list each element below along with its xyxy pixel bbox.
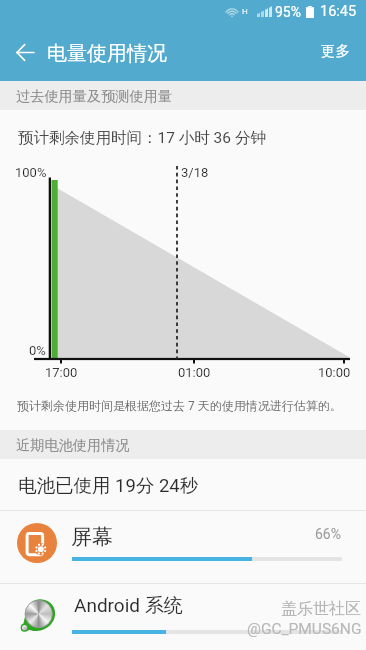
button[interactable]: 更多 xyxy=(313,34,358,68)
staticText: 0% xyxy=(29,343,46,358)
staticText: 17:00 xyxy=(45,365,78,380)
staticText: 近期电池使用情况 xyxy=(16,436,130,454)
staticText: 66% xyxy=(315,526,341,542)
staticText: Android 系统 xyxy=(74,594,183,618)
staticText: 盖乐世社区 xyxy=(281,599,361,619)
button[interactable]: 屏幕 xyxy=(0,510,366,583)
staticText: 更多 xyxy=(321,42,350,60)
staticText: @GC_PMUS6NG xyxy=(247,620,362,638)
staticText: 100% xyxy=(15,165,47,180)
staticText: 屏幕 xyxy=(71,524,113,550)
staticText: 01:00 xyxy=(178,365,211,380)
staticText: 3/18 xyxy=(181,165,209,180)
staticText: 10:00 xyxy=(318,365,351,380)
staticText: 过去使用量及预测使用量 xyxy=(16,87,173,105)
staticText: 预计剩余使用时间：17 小时 36 分钟 xyxy=(18,128,266,148)
button[interactable]: Android 系统 xyxy=(0,583,366,650)
staticText: 电池已使用 19分 24秒 xyxy=(18,474,199,497)
staticText: 电量使用情况 xyxy=(47,41,167,66)
staticText: 预计剩余使用时间是根据您过去 7 天的使用情况进行估算的。 xyxy=(17,398,342,413)
staticText: 16:45 xyxy=(320,3,357,20)
button[interactable]: Back xyxy=(7,34,43,70)
staticText: H xyxy=(242,7,248,16)
staticText: 95% xyxy=(275,4,301,20)
